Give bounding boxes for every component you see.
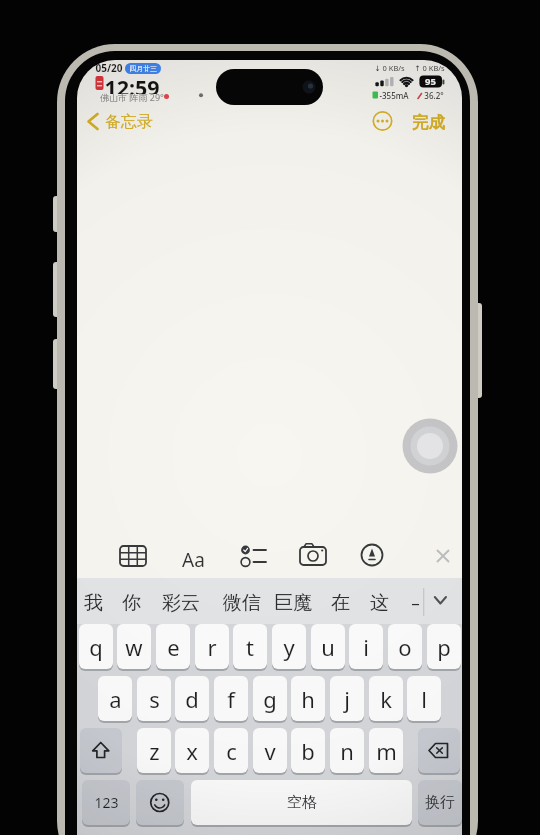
button[interactable] [300,543,326,569]
staticText: 四月廿三 [129,64,157,73]
button[interactable]: 彩云 [158,591,203,613]
button[interactable]: z [137,728,171,773]
staticText: v [264,736,276,766]
staticText: – [411,591,420,613]
button[interactable] [428,588,453,613]
button[interactable]: p [427,624,461,669]
staticText: l [421,684,427,714]
button[interactable]: 空格 [191,780,412,825]
button[interactable]: 123 [82,780,130,825]
staticText: y [283,632,295,662]
button[interactable] [371,110,395,134]
staticText: j [344,684,350,714]
staticText: 备忘录 [105,112,153,132]
button[interactable]: u [311,624,345,669]
button[interactable]: f [214,676,248,721]
button[interactable] [120,543,146,569]
staticText: 这 [370,591,389,613]
button[interactable] [80,728,122,773]
button[interactable]: 我 [80,591,107,613]
button[interactable]: 完成 [411,112,445,132]
button[interactable]: 这 [366,591,393,613]
button[interactable]: k [369,676,403,721]
staticText: 完成 [412,112,445,132]
staticText: 在 [331,591,350,613]
staticText: q [89,632,103,662]
staticText: d [185,684,199,714]
button[interactable] [403,419,458,474]
staticText: -355mA [379,90,409,101]
staticText: n [340,736,354,766]
button[interactable]: a [98,676,132,721]
button[interactable] [85,110,103,134]
button[interactable]: c [214,728,248,773]
button[interactable]: j [330,676,364,721]
button[interactable]: 微信 [219,591,265,613]
button[interactable]: m [369,728,403,773]
button[interactable]: t [233,624,267,669]
staticText: x [186,736,198,766]
button[interactable]: s [137,676,171,721]
button[interactable]: y [272,624,306,669]
staticText: f [227,684,235,714]
staticText: c [226,736,237,766]
button[interactable]: 在 [327,591,354,613]
staticText: 彩云 [162,591,200,613]
staticText: u [321,632,335,662]
staticText: 换行 [425,793,455,812]
staticText: m [376,736,397,766]
staticText: e [167,632,180,662]
button[interactable]: g [253,676,287,721]
staticText: k [380,684,392,714]
button[interactable] [241,543,267,569]
staticText: s [149,684,160,714]
staticText: 12:59 [104,73,160,94]
button[interactable]: x [175,728,209,773]
button[interactable]: o [388,624,422,669]
button[interactable] [359,542,385,568]
staticText: z [149,736,160,766]
button[interactable]: Aa [178,547,208,567]
button[interactable]: n [330,728,364,773]
staticText: 123 [94,793,119,812]
staticText: o [398,632,412,662]
staticText: r [207,632,217,662]
staticText: a [109,684,122,714]
staticText: w [125,632,143,662]
staticText: 你 [122,591,141,613]
staticText: 05/20 [95,61,123,73]
staticText: Aa [182,547,205,567]
staticText: g [263,684,277,714]
staticText: 巨魔 [274,591,312,613]
button[interactable]: d [175,676,209,721]
button[interactable]: 你 [118,591,145,613]
button[interactable]: b [291,728,325,773]
staticText: 空格 [287,793,317,812]
staticText: b [301,736,315,766]
staticText: t [246,632,254,662]
button[interactable] [418,728,460,773]
button[interactable]: h [291,676,325,721]
button[interactable]: r [195,624,229,669]
button[interactable] [430,543,456,569]
staticText: ↓ 0 KB/s [374,63,405,73]
button[interactable]: l [407,676,441,721]
staticText: h [301,684,315,714]
button[interactable]: q [79,624,113,669]
button[interactable]: v [253,728,287,773]
staticText: p [437,632,451,662]
button[interactable]: w [117,624,151,669]
button[interactable]: i [349,624,383,669]
staticText: 95 [425,75,436,87]
staticText: i [363,632,369,662]
staticText: 佛山市 阵雨 29° [100,91,164,102]
button[interactable]: 巨魔 [270,591,316,613]
button[interactable] [136,780,184,825]
button[interactable]: 备忘录 [103,112,155,132]
staticText: 微信 [223,591,261,613]
staticText: 我 [84,591,103,613]
button[interactable]: e [156,624,190,669]
staticText: 36.2° [424,90,444,101]
staticText: ↑ 0 KB/s [414,63,445,73]
button[interactable]: 换行 [418,780,462,825]
